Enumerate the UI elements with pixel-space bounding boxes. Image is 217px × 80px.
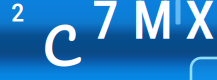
staticText: 7	[92, 0, 119, 52]
staticText: C	[42, 4, 75, 80]
staticText: 2	[11, 0, 24, 28]
staticText: X	[185, 0, 215, 52]
staticText: M	[132, 0, 172, 52]
